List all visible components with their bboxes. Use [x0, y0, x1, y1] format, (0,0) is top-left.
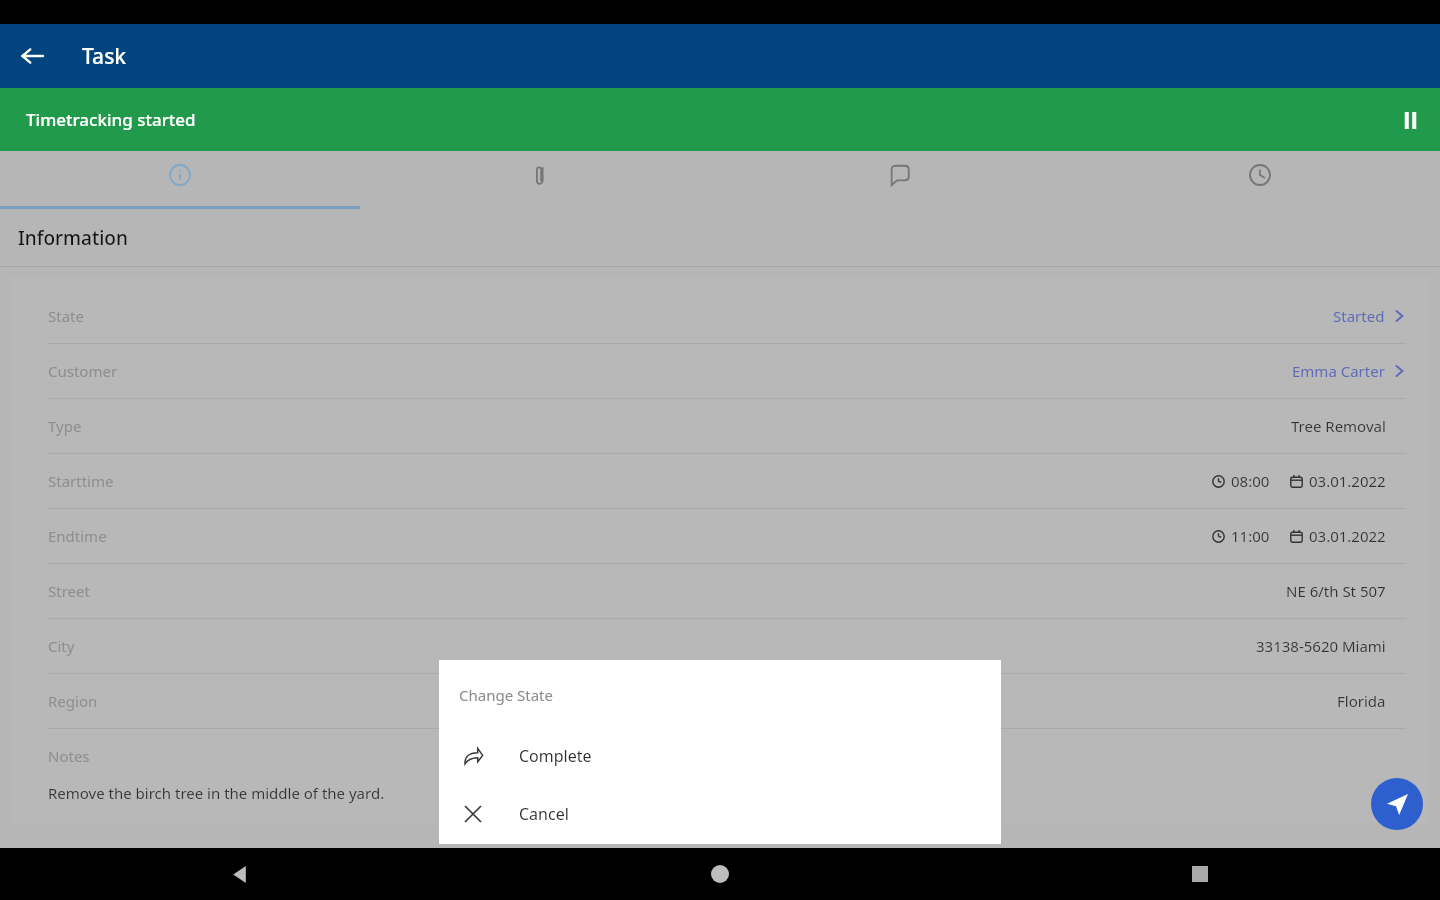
staticText: Region: [48, 691, 98, 711]
button[interactable]: Street: [10, 564, 1430, 618]
staticText: Tree Removal: [1291, 416, 1386, 436]
staticText: Cancel: [519, 803, 569, 825]
button[interactable]: City: [10, 619, 1430, 673]
staticText: 11:00: [1231, 526, 1270, 546]
staticText: Timetracking started: [26, 108, 196, 131]
button[interactable]: History tab: [1080, 151, 1440, 209]
button[interactable]: State: [10, 289, 1430, 343]
staticText: 33138-5620 Miami: [1256, 636, 1386, 656]
button[interactable]: Back: [0, 848, 480, 900]
button[interactable]: Home: [480, 848, 960, 900]
button[interactable]: Information tab: [0, 151, 360, 209]
button[interactable]: Starttime: [10, 454, 1430, 508]
staticText: State: [48, 306, 84, 326]
button[interactable]: Back: [8, 32, 56, 80]
button[interactable]: Region: [10, 674, 1430, 728]
staticText: City: [48, 636, 75, 656]
staticText: 03.01.2022: [1309, 526, 1386, 546]
staticText: Change State: [459, 685, 553, 705]
button[interactable]: Pause timetracking: [1382, 92, 1438, 148]
staticText: Task: [82, 42, 127, 71]
staticText: Starttime: [48, 471, 114, 491]
button[interactable]: Complete: [439, 727, 1001, 785]
staticText: Emma Carter: [1292, 361, 1385, 381]
button[interactable]: Messages tab: [720, 151, 1080, 209]
staticText: Information: [18, 225, 128, 251]
button[interactable]: Recents: [960, 848, 1440, 900]
staticText: 08:00: [1231, 471, 1270, 491]
staticText: Street: [48, 581, 90, 601]
staticText: Remove the birch tree in the middle of t…: [48, 783, 385, 803]
staticText: Endtime: [48, 526, 107, 546]
staticText: Type: [48, 416, 82, 436]
staticText: 03.01.2022: [1309, 471, 1386, 491]
staticText: Complete: [519, 745, 592, 767]
button[interactable]: Attachments tab: [360, 151, 720, 209]
staticText: Started: [1333, 306, 1385, 326]
staticText: Customer: [48, 361, 118, 381]
button[interactable]: Cancel: [439, 785, 1001, 843]
button[interactable]: Endtime: [10, 509, 1430, 563]
staticText: Florida: [1337, 691, 1386, 711]
button[interactable]: Customer: [10, 344, 1430, 398]
staticText: NE 6/th St 507: [1286, 581, 1386, 601]
staticText: Notes: [48, 746, 90, 766]
button[interactable]: Type: [10, 399, 1430, 453]
button[interactable]: Navigate: [1371, 778, 1423, 830]
